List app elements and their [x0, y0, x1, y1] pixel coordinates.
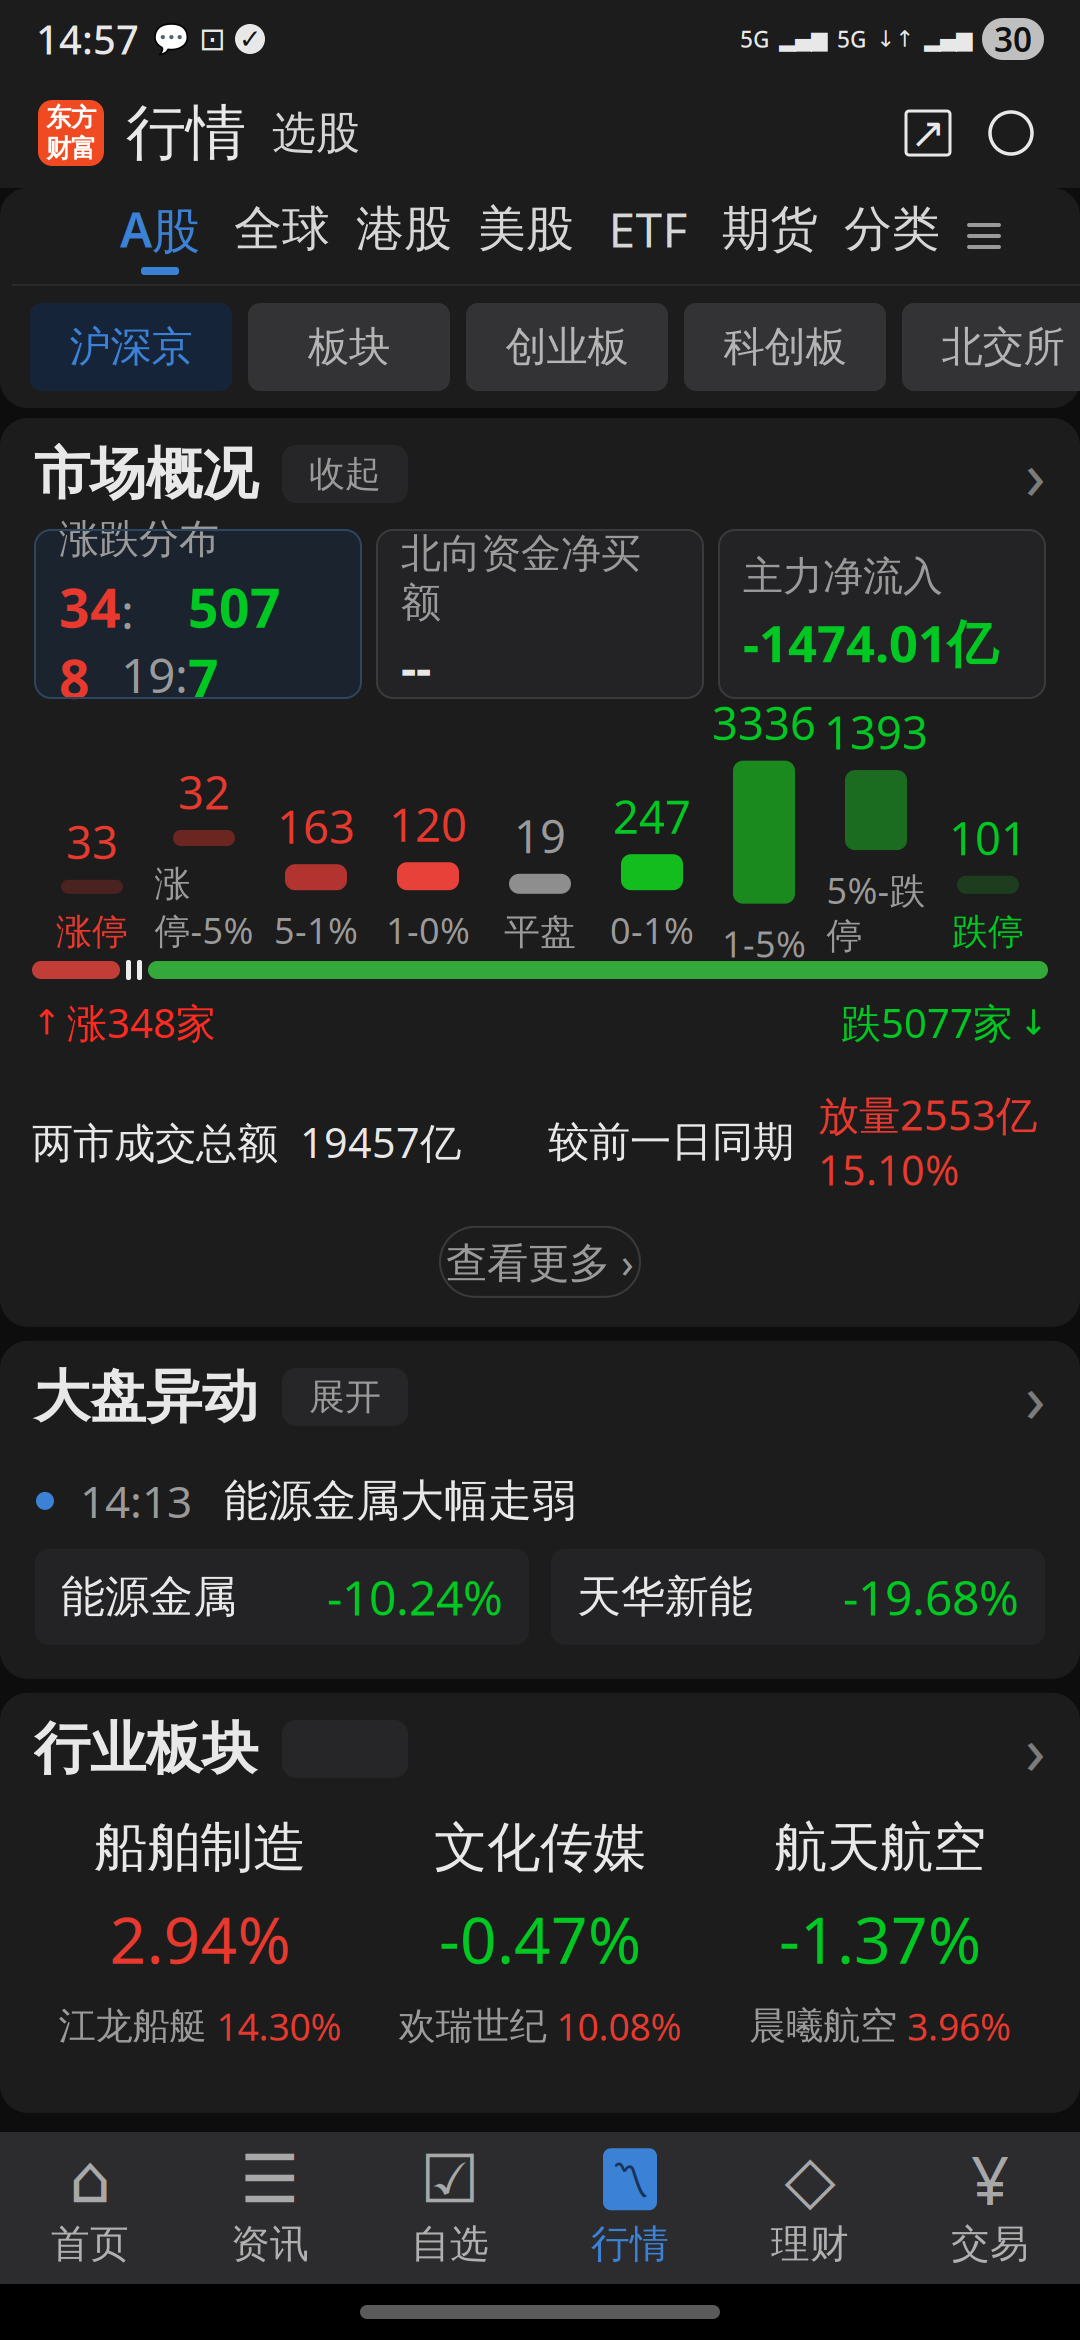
staticText: 分类 — [844, 199, 940, 258]
staticText: 1-0% — [386, 906, 470, 954]
staticText: 5G — [740, 24, 769, 54]
button[interactable]: 能源金属 — [35, 1549, 529, 1645]
staticText: 5%-跌停 — [826, 866, 925, 958]
staticText: 沪深京 — [69, 322, 192, 372]
staticText: › — [1025, 430, 1046, 518]
button[interactable]: ◇ — [720, 2132, 900, 2284]
button[interactable]: 〽 — [540, 2132, 720, 2284]
button[interactable]: 查看更多 › — [440, 1227, 640, 1297]
staticText: 348 — [59, 572, 121, 713]
button[interactable]: 14:13 — [0, 1453, 1080, 1549]
staticText: 跌5077家 — [841, 996, 1013, 1049]
button[interactable]: 行业板块 — [0, 1693, 1080, 1805]
staticText: 欢瑞世纪 — [398, 2003, 546, 2049]
staticText: 江龙船艇 — [58, 2003, 206, 2049]
staticText: -- — [401, 635, 431, 699]
staticText: A股 — [120, 197, 200, 261]
button[interactable]: ☰ — [180, 2132, 360, 2284]
staticText: ⌂ — [69, 2141, 111, 2217]
button[interactable]: 大盘异动 — [0, 1341, 1080, 1453]
staticText: 163 — [277, 796, 355, 856]
button[interactable]: 选股 — [246, 106, 360, 160]
staticText: 14:13 — [80, 1472, 192, 1530]
button[interactable]: ☑ — [360, 2132, 540, 2284]
button[interactable]: 涨跌分布 — [35, 530, 361, 698]
staticText: 文化传媒 — [434, 1815, 646, 1880]
staticText: ETF — [608, 197, 687, 261]
button[interactable]: 分类 — [831, 188, 953, 284]
staticText: 14.30% — [216, 2001, 341, 2051]
button[interactable]: 船舶制造 — [30, 1815, 370, 2051]
staticText: 3336 — [712, 692, 816, 753]
staticText: -0.47% — [439, 1896, 641, 1981]
staticText: 10.08% — [556, 2001, 681, 2051]
staticText: 理财 — [771, 2220, 849, 2268]
button[interactable]: 行情 — [104, 96, 246, 170]
staticText: 板块 — [308, 322, 390, 372]
button[interactable]: ⌂ — [0, 2132, 180, 2284]
staticText: ⊡ — [199, 21, 226, 57]
button[interactable]: 北交所 — [902, 303, 1080, 391]
button[interactable]: 文化传媒 — [370, 1815, 710, 2051]
button[interactable]: ETF — [587, 188, 709, 284]
button[interactable]: A股 — [99, 188, 221, 284]
button[interactable]: 创业板 — [466, 303, 668, 391]
staticText: ◇ — [784, 2141, 835, 2217]
button[interactable]: 天华新能 — [551, 1549, 1045, 1645]
staticText: ▂▄▆ — [779, 27, 827, 51]
staticText: 航天航空 — [774, 1815, 986, 1880]
staticText: ☰ — [240, 2141, 300, 2217]
staticText: 3.96% — [907, 2001, 1011, 2051]
staticText: 行业板块 — [34, 1714, 258, 1783]
button[interactable]: 航天航空 — [710, 1815, 1050, 2051]
staticText: 涨停-5% — [154, 862, 253, 954]
staticText: :19: — [121, 579, 188, 706]
staticText: 能源金属 — [61, 1570, 237, 1624]
staticText: ↑ — [32, 1003, 61, 1042]
staticText: 💬 — [153, 22, 190, 56]
staticText: 1-5% — [722, 920, 806, 967]
staticText: 天华新能 — [577, 1570, 753, 1624]
button[interactable]: 北向资金净买额 — [377, 530, 703, 698]
staticText: 全球 — [234, 199, 330, 258]
staticText: 展开 — [309, 1375, 381, 1419]
button[interactable]: More categories — [953, 197, 1015, 275]
button[interactable]: 美股 — [465, 188, 587, 284]
staticText: 14:57 — [36, 12, 139, 65]
button[interactable]: 港股 — [343, 188, 465, 284]
staticText: 科创板 — [723, 322, 846, 372]
staticText: 120 — [389, 794, 467, 854]
button[interactable]: Search — [956, 102, 1042, 164]
staticText: ↓ — [1019, 1003, 1048, 1042]
staticText: 247 — [613, 786, 691, 846]
staticText: -1.37% — [779, 1896, 981, 1981]
staticText: 5G — [837, 24, 866, 54]
button[interactable]: 期货 — [709, 188, 831, 284]
button[interactable]: 科创板 — [684, 303, 886, 391]
staticText: -1474.01亿 — [743, 609, 998, 676]
staticText: -19.68% — [843, 1565, 1019, 1629]
staticText: 晨曦航空 — [749, 2003, 897, 2049]
staticText: 首页 — [51, 2220, 129, 2268]
button[interactable]: 市场概况 — [0, 418, 1080, 530]
staticText: 东方 财富 — [46, 102, 96, 164]
staticText: 美股 — [478, 199, 574, 258]
staticText: 船舶制造 — [94, 1815, 306, 1880]
staticText: ▂▄▆ — [924, 27, 972, 51]
staticText: ☑ — [420, 2141, 480, 2217]
staticText: ¥ — [971, 2135, 1009, 2223]
button[interactable]: 沪深京 — [30, 303, 232, 391]
button[interactable]: 东方财富 — [38, 100, 104, 166]
button[interactable]: 全球 — [221, 188, 343, 284]
staticText: 两市成交总额 19457亿 — [32, 1115, 461, 1169]
button[interactable]: ¥ — [900, 2132, 1080, 2284]
button[interactable]: 板块 — [248, 303, 450, 391]
staticText: 5077 — [188, 572, 281, 713]
staticText: 能源金属大幅走弱 — [224, 1474, 576, 1528]
staticText: 资讯 — [231, 2220, 309, 2268]
button[interactable]: Share — [900, 105, 956, 161]
button[interactable]: 主力净流入 — [719, 530, 1045, 698]
staticText: 0-1% — [610, 906, 694, 954]
staticText: › — [1025, 1705, 1046, 1793]
staticText: 港股 — [356, 199, 452, 258]
